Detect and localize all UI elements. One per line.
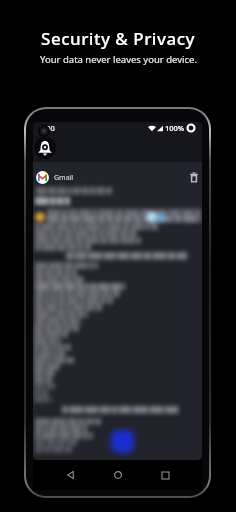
button[interactable]: Delete [186,170,201,185]
button[interactable]: Back [60,465,80,485]
button[interactable]: Recent apps [155,465,175,485]
staticText: 9:00 [40,123,55,133]
button[interactable] [111,430,134,453]
staticText: 100% [165,123,185,133]
staticText: Your data never leaves your device. [40,53,197,66]
button[interactable]: Gmail [33,169,202,186]
staticText: Security & Privacy [41,27,195,50]
button[interactable]: Home [108,465,128,485]
button[interactable]: Notifications [34,137,56,159]
staticText: Gmail [54,173,74,183]
